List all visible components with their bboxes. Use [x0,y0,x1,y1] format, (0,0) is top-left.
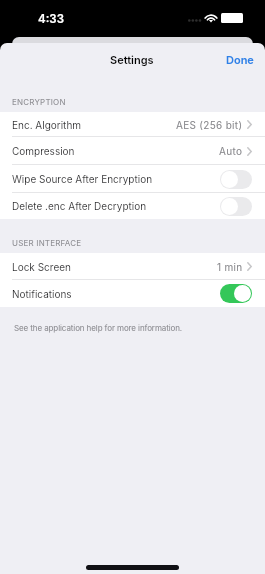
staticText: Notifications [12,288,72,300]
staticText: 1 min [217,261,243,273]
staticText: Settings [110,53,154,66]
button[interactable]: Enc. Algorithm [0,112,265,137]
staticText: See the application help for more inform… [14,323,183,333]
staticText: Done [226,53,254,66]
button[interactable]: Done [212,48,265,71]
staticText: Enc. Algorithm [12,119,82,131]
button[interactable]: Compression [0,137,265,165]
staticText: Compression [12,145,75,157]
staticText: Wipe Source After Encryption [12,173,153,185]
staticText: USER INTERFACE [12,238,82,248]
staticText: AES (256 bit) [176,119,243,131]
staticText: Auto [219,145,243,157]
staticText: ENCRYPTION [12,97,66,107]
button[interactable]: Wipe Source After Encryption [0,165,265,193]
staticText: 4:33 [38,12,64,26]
staticText: Lock Screen [12,261,71,273]
staticText: Delete .enc After Decryption [12,200,147,212]
button[interactable]: Notifications [0,280,265,307]
button[interactable]: Delete .enc After Decryption [0,193,265,219]
button[interactable]: Lock Screen [0,253,265,280]
